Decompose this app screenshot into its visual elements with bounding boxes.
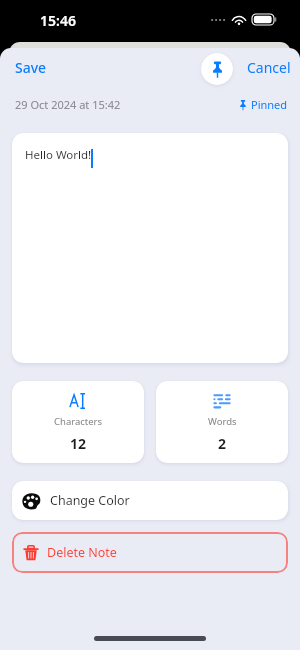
button[interactable]: Hello World! — [12, 133, 288, 363]
staticText: Delete Note — [47, 544, 117, 561]
button[interactable]: Cancel — [233, 51, 300, 88]
staticText: 12 — [70, 434, 87, 453]
button[interactable]: Save — [0, 51, 62, 88]
staticText: Change Color — [50, 492, 130, 509]
button[interactable]: Change Color — [12, 481, 288, 520]
staticText: 29 Oct 2024 at 15:42 — [15, 97, 121, 112]
button[interactable]: Pinned — [239, 97, 300, 112]
staticText: Pinned — [251, 97, 288, 112]
staticText: Characters — [54, 415, 103, 428]
staticText: 15:46 — [40, 11, 76, 30]
staticText: Words — [208, 415, 237, 428]
staticText: Hello World! — [25, 147, 92, 163]
staticText: Save — [15, 58, 47, 77]
staticText: Cancel — [247, 58, 291, 77]
button[interactable]: Characters — [12, 381, 144, 463]
button[interactable]: Pin note — [201, 53, 233, 85]
staticText: 2 — [218, 434, 227, 453]
button[interactable]: Words — [156, 381, 288, 463]
button[interactable]: Delete Note — [12, 532, 288, 573]
